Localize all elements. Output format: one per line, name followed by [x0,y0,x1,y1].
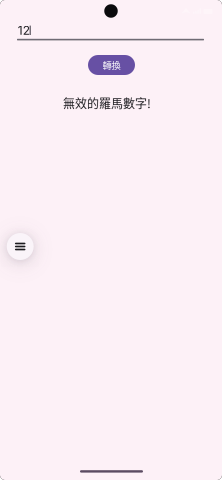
staticText: 12 [18,23,30,37]
button[interactable]: 轉換 [88,55,135,75]
staticText: 無效的羅馬數字! [63,94,151,112]
staticText: 轉換 [102,58,120,72]
button[interactable]: Menu [7,233,34,260]
